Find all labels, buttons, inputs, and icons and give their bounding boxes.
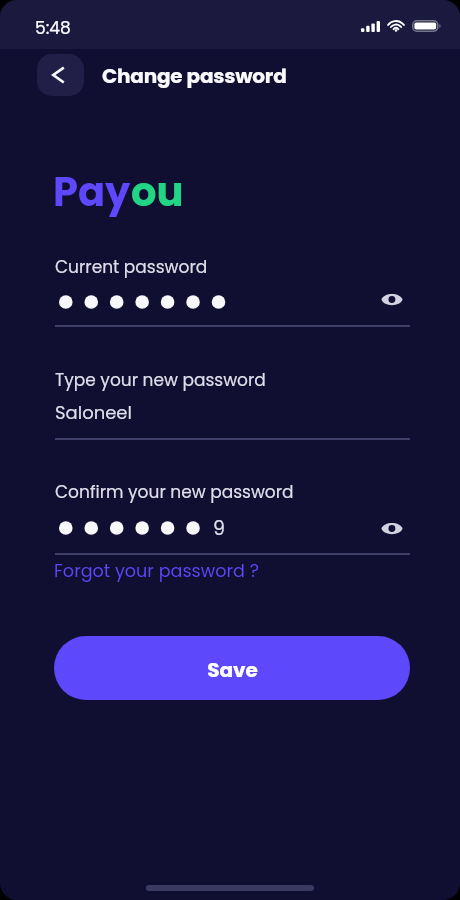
staticText: 9 <box>213 514 225 542</box>
button[interactable]: Forgot your password ? <box>0 0 205 26</box>
button[interactable]: Back <box>37 54 84 96</box>
staticText: Save <box>207 656 258 684</box>
button[interactable]: Show password <box>379 517 405 539</box>
staticText: Pay <box>53 164 131 220</box>
staticText: Change password <box>102 61 287 91</box>
staticText: 5:48 <box>35 15 71 41</box>
staticText: Confirm your new password <box>55 479 294 505</box>
staticText: Type your new password <box>55 367 266 393</box>
staticText: Saloneel <box>55 399 132 426</box>
staticText: ou <box>131 164 184 220</box>
button[interactable]: Save <box>54 636 410 700</box>
button[interactable]: Show password <box>379 288 405 310</box>
staticText: Current password <box>55 254 208 280</box>
